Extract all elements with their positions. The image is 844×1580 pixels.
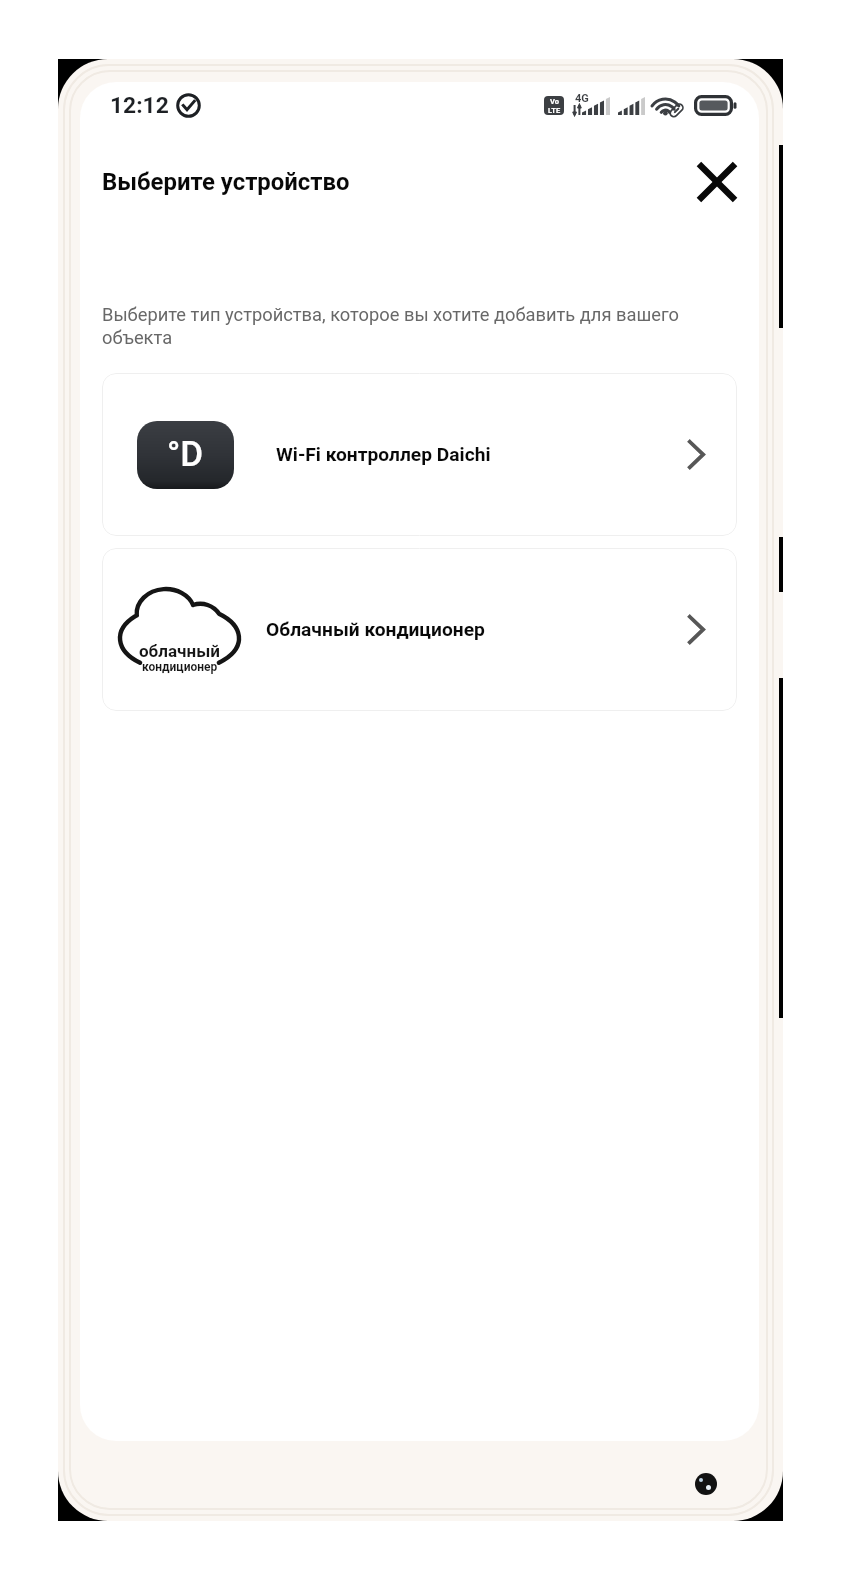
button[interactable]: Close — [684, 152, 750, 212]
staticText: Wi-Fi контроллер Daichi — [276, 443, 491, 466]
staticText: LTE — [548, 106, 561, 115]
staticText: 4G — [575, 92, 589, 105]
button[interactable]: °D — [102, 373, 737, 536]
staticText: облачный — [139, 641, 220, 661]
staticText: 12:12 — [110, 92, 169, 119]
staticText: Выберите тип устройства, которое вы хоти… — [102, 304, 702, 348]
staticText: Выберите устройство — [102, 168, 350, 196]
staticText: кондиционер — [142, 660, 218, 674]
staticText: °D — [167, 434, 204, 475]
staticText: Vo — [550, 97, 559, 106]
button[interactable]: облачный — [102, 548, 737, 711]
staticText: Облачный кондиционер — [266, 618, 485, 641]
